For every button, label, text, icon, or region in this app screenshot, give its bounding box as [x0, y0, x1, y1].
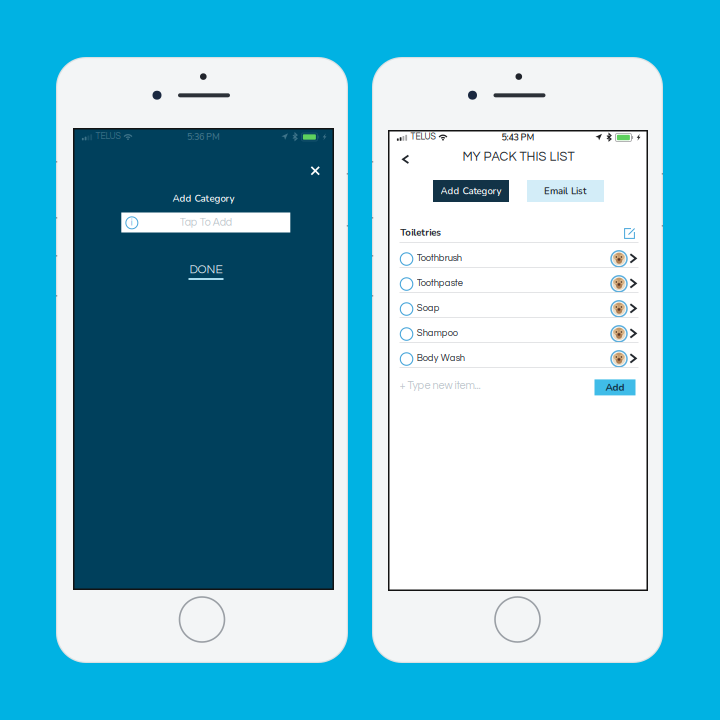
staticText: TELUS: [410, 132, 435, 141]
staticText: 5:36 PM: [187, 131, 220, 143]
button[interactable]: Shampoo: [388, 317, 648, 342]
staticText: Soap: [417, 303, 440, 313]
staticText: i: [131, 218, 133, 227]
staticText: Toothpaste: [417, 278, 463, 288]
staticText: Body Wash: [417, 353, 465, 363]
button[interactable]: Toothbrush: [388, 242, 648, 267]
button[interactable]: i: [121, 212, 290, 232]
staticText: Add Category: [440, 184, 501, 198]
staticText: Email List: [544, 184, 587, 198]
button[interactable]: DONE: [176, 263, 236, 285]
staticText: Add Category: [172, 192, 234, 205]
button[interactable]: Add: [594, 379, 635, 395]
staticText: Toothbrush: [417, 253, 462, 263]
staticText: TELUS: [95, 132, 120, 141]
staticText: Tap To Add: [180, 217, 232, 228]
button[interactable]: Soap: [388, 292, 648, 317]
staticText: Add: [605, 381, 624, 394]
button[interactable]: Add Category: [433, 180, 509, 202]
staticText: + Type new item...: [399, 380, 480, 391]
staticText: DONE: [189, 263, 222, 276]
button[interactable]: Email List: [527, 180, 604, 202]
button[interactable]: Toothpaste: [388, 267, 648, 292]
staticText: 5:43 PM: [501, 131, 534, 144]
staticText: MY PACK THIS LIST: [462, 150, 574, 163]
button[interactable]: Body Wash: [388, 342, 648, 367]
button[interactable]: Back: [393, 147, 419, 173]
button[interactable]: Close: [303, 159, 327, 183]
staticText: Toiletries: [400, 226, 441, 239]
button[interactable]: Edit: [619, 223, 639, 243]
staticText: Shampoo: [417, 328, 458, 338]
button[interactable]: + Type new item...: [399, 380, 549, 396]
